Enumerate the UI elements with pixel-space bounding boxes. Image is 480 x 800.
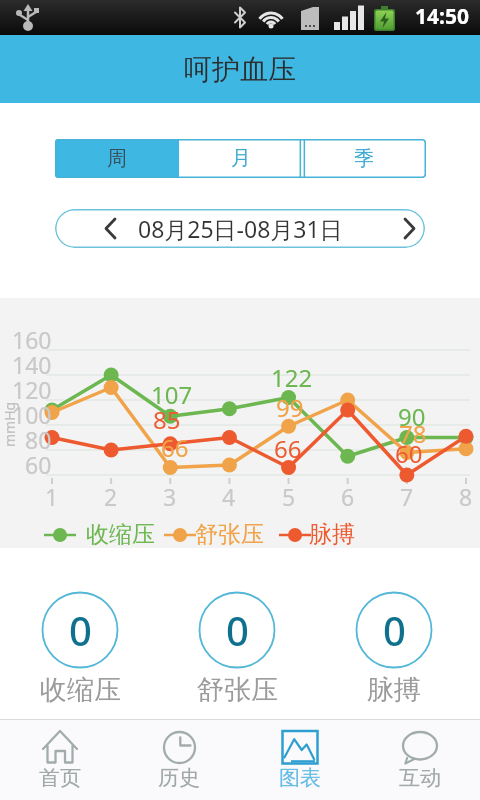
staticText: 7 [400, 481, 414, 512]
staticText: 呵护血压 [184, 52, 296, 87]
staticText: 85 [153, 403, 181, 436]
staticText: 收缩压 [86, 520, 155, 549]
staticText: 图表 [279, 765, 321, 791]
staticText: 66 [274, 432, 302, 465]
button[interactable]: 季 [302, 139, 426, 178]
staticText: 4 [222, 481, 236, 512]
staticText: 60 [395, 437, 423, 470]
button[interactable]: 周 [55, 139, 179, 178]
staticText: 0 [69, 603, 92, 657]
staticText: 周 [107, 146, 127, 171]
staticText: 120 [12, 374, 52, 405]
staticText: 5 [282, 481, 296, 512]
staticText: 0 [383, 603, 406, 657]
staticText: 脉搏 [367, 673, 421, 707]
staticText: 100 [12, 399, 52, 430]
staticText: 3 [163, 481, 177, 512]
staticText: 160 [12, 324, 52, 355]
staticText: 140 [12, 349, 52, 380]
staticText: 1 [45, 481, 59, 512]
staticText: 首页 [39, 765, 81, 791]
staticText: 舒张压 [197, 673, 278, 707]
staticText: 互动 [399, 765, 441, 791]
staticText: 历史 [158, 765, 200, 791]
button[interactable]: 月 [179, 139, 303, 178]
staticText: 66 [161, 431, 189, 464]
staticText: 122 [271, 361, 313, 394]
button[interactable]: 08月25日-08月31日 [55, 209, 425, 248]
button[interactable] [120, 719, 240, 800]
button[interactable] [240, 719, 360, 800]
staticText: 月 [231, 146, 251, 171]
staticText: 8 [459, 481, 473, 512]
staticText: 6 [341, 481, 355, 512]
staticText: 0 [226, 603, 249, 657]
staticText: 08月25日-08月31日 [138, 213, 343, 244]
staticText: 收缩压 [40, 673, 121, 707]
staticText: mmHg [0, 401, 19, 447]
staticText: 14:50 [415, 2, 469, 31]
staticText: 78 [399, 417, 427, 450]
button[interactable] [0, 719, 120, 800]
staticText: 60 [25, 449, 52, 480]
staticText: 80 [25, 424, 52, 455]
staticText: 99 [276, 391, 304, 424]
staticText: 107 [151, 378, 193, 411]
staticText: 2 [104, 481, 118, 512]
staticText: 90 [398, 400, 426, 433]
button[interactable] [360, 719, 480, 800]
staticText: 季 [354, 146, 374, 171]
staticText: 舒张压 [195, 520, 264, 549]
staticText: 脉搏 [309, 520, 355, 549]
